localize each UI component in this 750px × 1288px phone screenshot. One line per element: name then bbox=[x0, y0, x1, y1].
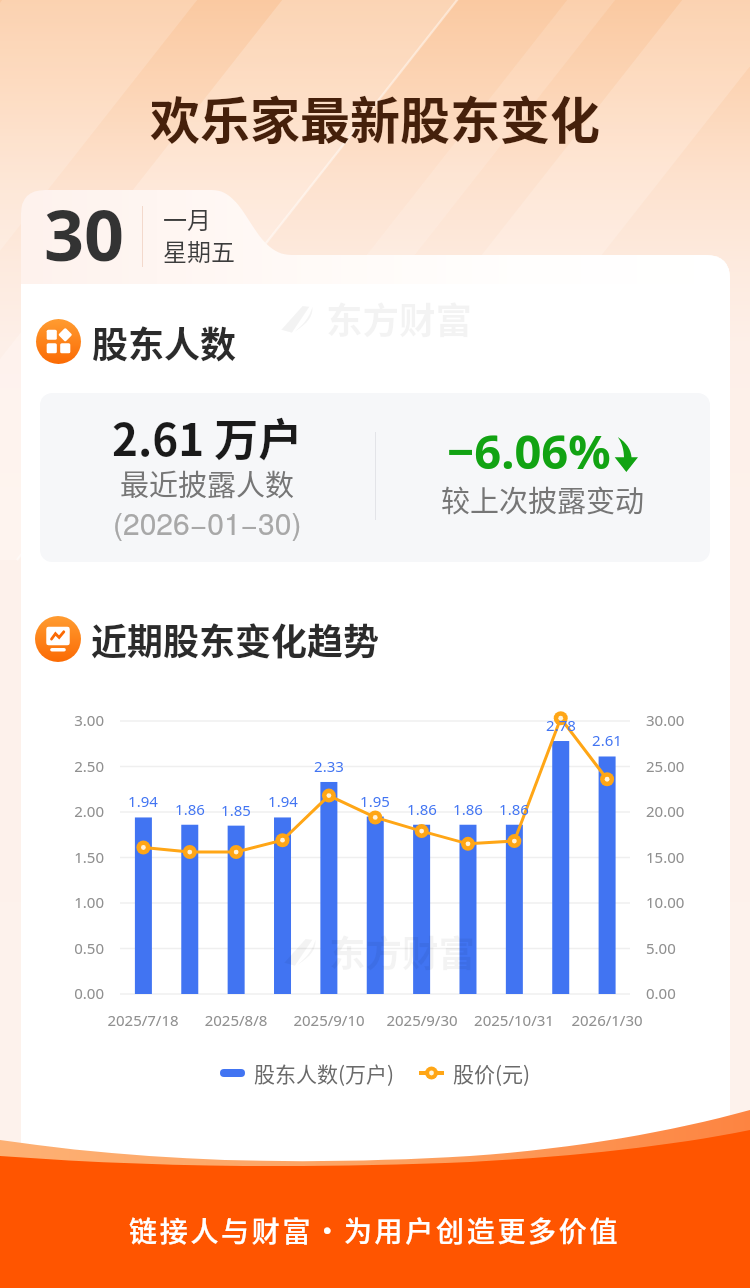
staticText: 星期五 bbox=[163, 233, 235, 268]
staticText: 1.85 bbox=[196, 800, 276, 820]
staticText: 2025/7/18 bbox=[83, 1010, 203, 1030]
staticText: 2.61 万户 bbox=[112, 405, 303, 469]
other: 近期股东变化趋势 bbox=[35, 616, 81, 662]
staticText: 1.86 bbox=[150, 799, 230, 819]
staticText: 0.00 bbox=[44, 983, 104, 1003]
staticText: 10.00 bbox=[646, 892, 726, 912]
staticText: 2.61 bbox=[567, 730, 647, 750]
staticText: 15.00 bbox=[646, 847, 726, 867]
staticText: 2.00 bbox=[44, 801, 104, 821]
staticText: 一月 bbox=[163, 201, 211, 236]
staticText: 东方财富 bbox=[329, 925, 475, 978]
staticText: 2026/1/30 bbox=[547, 1010, 667, 1030]
staticText: 链接人与财富·为用户创造更多价值 bbox=[129, 1210, 621, 1251]
staticText: 5.00 bbox=[646, 938, 726, 958]
staticText: 1.94 bbox=[243, 791, 323, 811]
staticText: 欢乐家最新股东变化 bbox=[150, 81, 600, 153]
staticText: (2026−01−30) bbox=[113, 501, 302, 544]
staticText: 0.50 bbox=[44, 938, 104, 958]
staticText: 近期股东变化趋势 bbox=[91, 613, 380, 665]
staticText: 1.00 bbox=[44, 892, 104, 912]
staticText: 2025/8/8 bbox=[176, 1010, 296, 1030]
staticText: 1.95 bbox=[335, 791, 415, 811]
staticText: 股东人数(万户) bbox=[254, 1058, 395, 1088]
staticText: 1.86 bbox=[474, 799, 554, 819]
other: 股东人数 bbox=[36, 319, 81, 364]
staticText: 30 bbox=[44, 186, 125, 281]
staticText: 2025/10/31 bbox=[454, 1010, 574, 1030]
staticText: 2.50 bbox=[44, 756, 104, 776]
staticText: 最近披露人数 bbox=[120, 462, 295, 504]
staticText: 2025/9/10 bbox=[269, 1010, 389, 1030]
staticText: 1.50 bbox=[44, 847, 104, 867]
staticText: 股东人数 bbox=[92, 316, 237, 368]
button[interactable]: 2.61 万户 bbox=[40, 393, 710, 562]
staticText: 25.00 bbox=[646, 756, 726, 776]
staticText: 股价(元) bbox=[453, 1058, 531, 1088]
staticText: 30.00 bbox=[646, 710, 726, 730]
staticText: 2.78 bbox=[521, 715, 601, 735]
staticText: 1.86 bbox=[382, 799, 462, 819]
staticText: 3.00 bbox=[44, 710, 104, 730]
staticText: 0.00 bbox=[646, 983, 726, 1003]
staticText: −6.06% bbox=[447, 419, 611, 483]
staticText: 1.86 bbox=[428, 799, 508, 819]
staticText: 1.94 bbox=[103, 791, 183, 811]
staticText: 20.00 bbox=[646, 801, 726, 821]
staticText: 2025/9/30 bbox=[362, 1010, 482, 1030]
staticText: 东方财富 bbox=[326, 292, 472, 345]
staticText: 2.33 bbox=[289, 756, 369, 776]
staticText: 较上次披露变动 bbox=[441, 478, 645, 520]
